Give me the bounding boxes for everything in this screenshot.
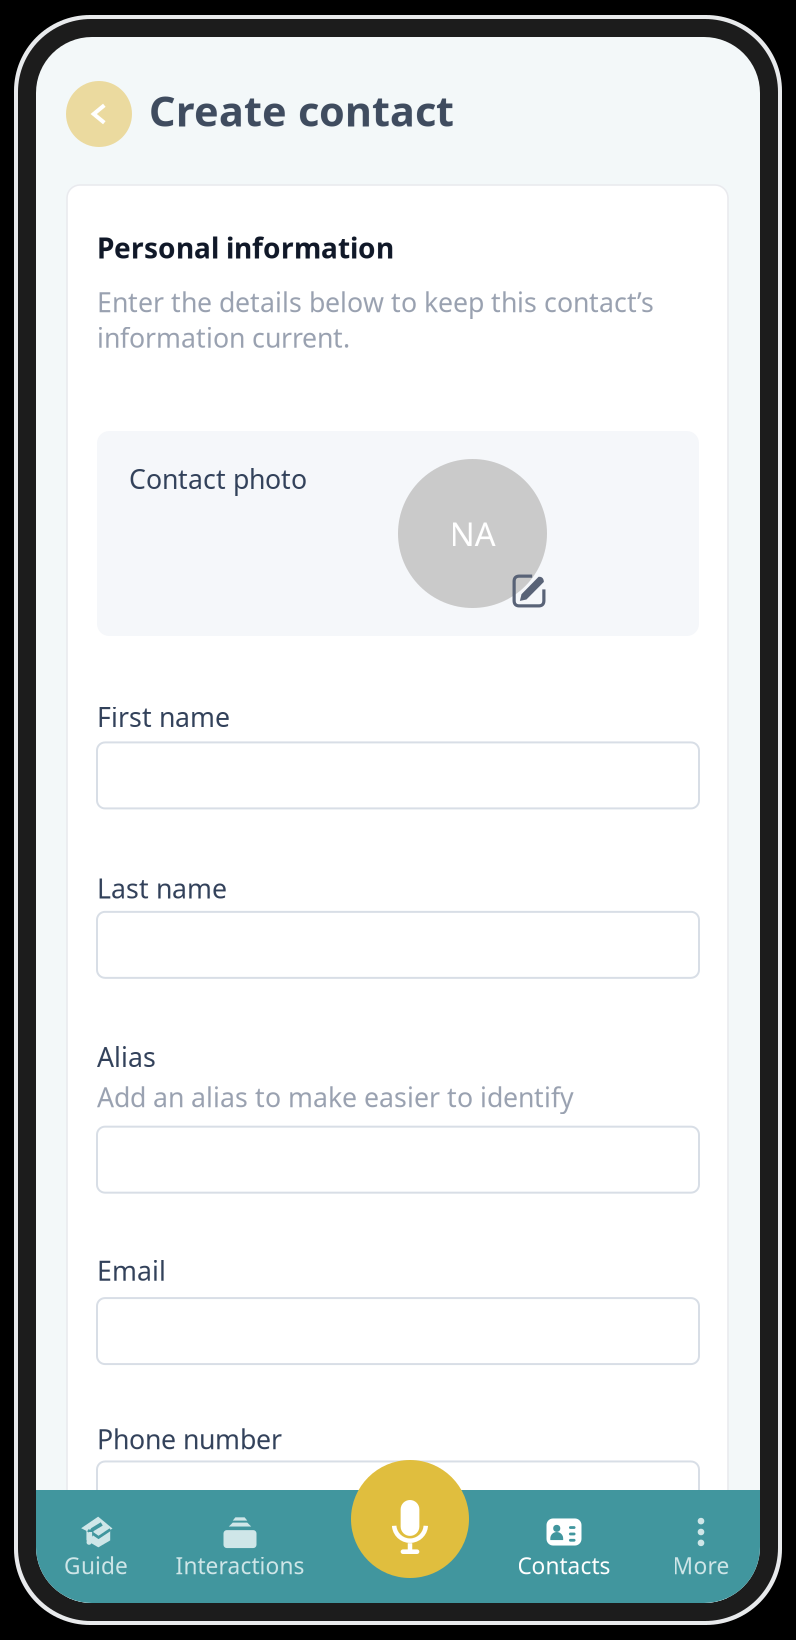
staticText: Contact photo [129, 461, 307, 496]
staticText: Add an alias to make easier to identify [97, 1079, 574, 1115]
button[interactable]: Guide [36, 1490, 156, 1602]
button[interactable]: Edit contact photo [398, 459, 547, 608]
staticText: Last name [97, 870, 227, 906]
staticText: Contacts [517, 1550, 610, 1581]
staticText: Guide [64, 1550, 128, 1581]
staticText: First name [97, 699, 230, 734]
button[interactable]: Contacts [486, 1490, 642, 1602]
staticText: More [672, 1550, 729, 1581]
staticText: NA [449, 511, 495, 556]
staticText: Create contact [149, 83, 454, 138]
button[interactable]: Back [66, 81, 132, 147]
staticText: Phone number [97, 1421, 282, 1456]
staticText: Interactions [175, 1550, 304, 1581]
button[interactable]: Voice input [351, 1460, 469, 1578]
button[interactable]: Interactions [156, 1490, 324, 1602]
staticText: Alias [97, 1039, 156, 1074]
staticText: Personal information [97, 229, 394, 266]
staticText: Enter the details below to keep this con… [97, 284, 654, 355]
staticText: Email [97, 1253, 166, 1288]
button[interactable]: More [642, 1490, 760, 1602]
